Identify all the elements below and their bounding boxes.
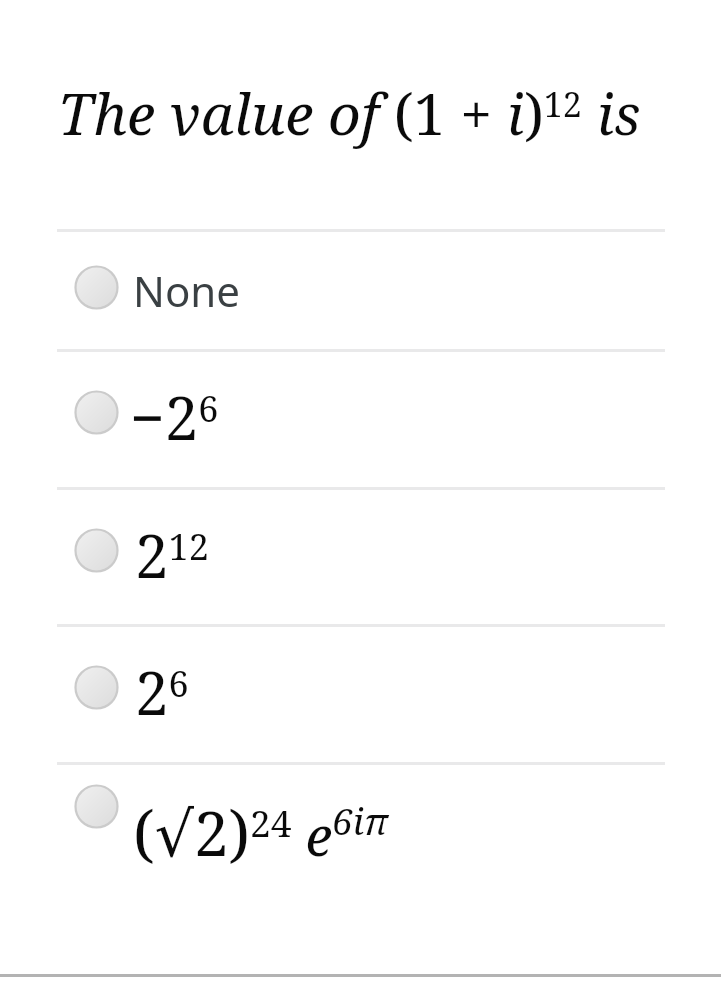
staticText: (√2)24 e6iπ bbox=[133, 790, 388, 874]
button[interactable]: Select option two to the sixth bbox=[74, 665, 119, 710]
staticText: The value of (1 + i)12 is bbox=[58, 74, 641, 152]
button[interactable]: 26 bbox=[135, 651, 189, 733]
button[interactable]: (√2)24 e6iπ bbox=[133, 790, 388, 874]
staticText: None bbox=[133, 262, 240, 319]
button[interactable]: Select option None bbox=[74, 265, 119, 310]
button[interactable]: None bbox=[133, 262, 240, 319]
button[interactable]: Select option root two to the twenty fou… bbox=[74, 784, 119, 829]
button[interactable]: The value of (1 + i)12 is bbox=[58, 74, 641, 152]
button[interactable]: 212 bbox=[135, 514, 209, 596]
staticText: 212 bbox=[135, 514, 209, 596]
button[interactable]: Select option two to the twelfth bbox=[74, 528, 119, 573]
staticText: 26 bbox=[135, 651, 189, 733]
button[interactable]: Select option minus two to the sixth bbox=[74, 390, 119, 435]
button[interactable]: −26 bbox=[130, 376, 219, 458]
staticText: −26 bbox=[130, 376, 219, 458]
